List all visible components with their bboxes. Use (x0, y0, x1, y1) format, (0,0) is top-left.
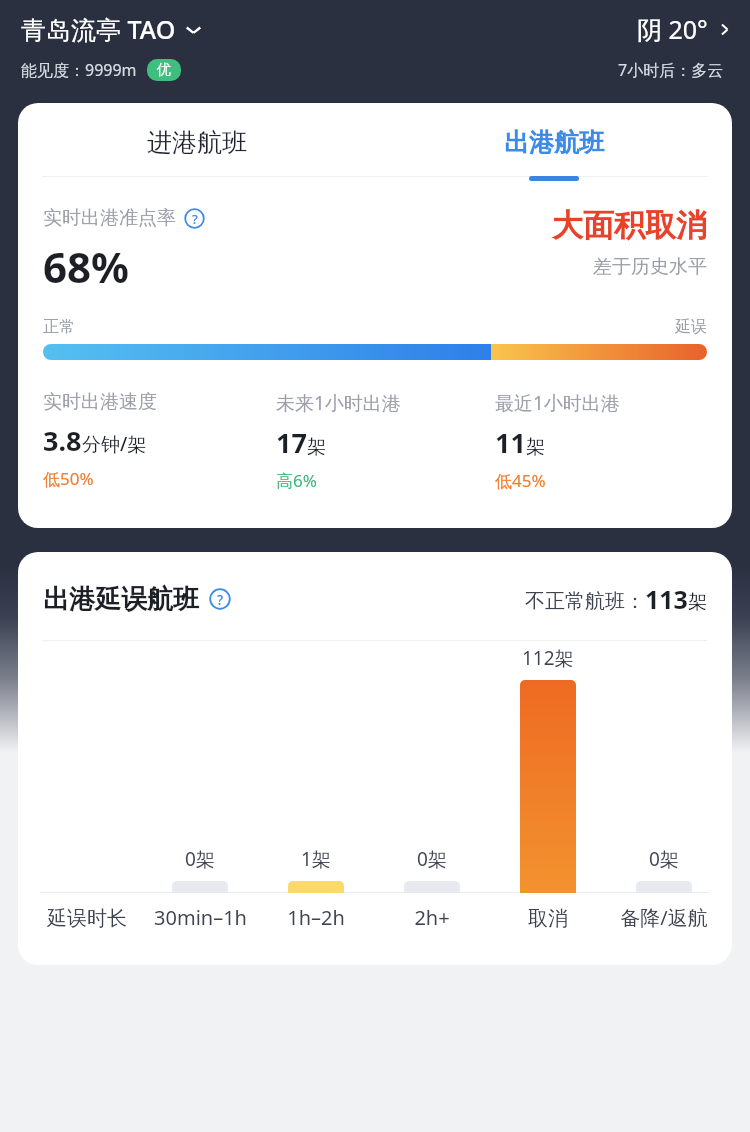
staticText: 延误 (675, 317, 707, 337)
staticText: ? (192, 210, 198, 228)
button[interactable]: 出港航班 (375, 127, 732, 158)
staticText: 不正常航班： (525, 589, 645, 614)
staticText: 7小时后：多云 (618, 59, 724, 81)
staticText: 差于历史水平 (593, 255, 707, 279)
staticText: 实时出港准点率 (43, 206, 176, 230)
staticText: 112架 (522, 645, 574, 671)
staticText: 1h–2h (287, 904, 345, 931)
staticText: 架 (688, 590, 707, 614)
button[interactable]: Help (209, 588, 231, 610)
staticText: 分钟/架 (82, 431, 147, 457)
staticText: 30min–1h (154, 904, 247, 931)
staticText: 0架 (417, 846, 447, 872)
button[interactable]: 1架 (258, 641, 374, 893)
staticText: 2h+ (414, 904, 450, 931)
staticText: 阴 20° (637, 12, 708, 46)
staticText: 取消 (528, 906, 568, 931)
button[interactable]: 0架 (606, 641, 722, 893)
staticText: 备降/返航 (620, 904, 708, 931)
staticText: 青岛流亭 TAO (21, 12, 176, 46)
button[interactable]: 112架 (490, 641, 606, 893)
staticText: ? (217, 590, 224, 609)
staticText: 11 (495, 424, 526, 461)
staticText: 113 (645, 582, 688, 616)
button[interactable]: 未来1小时出港 (276, 390, 495, 492)
staticText: 1架 (301, 846, 331, 872)
button[interactable]: 实时出港速度 (43, 390, 276, 490)
staticText: 优 (157, 61, 171, 79)
staticText: 能见度：9999m (21, 59, 137, 81)
staticText: 进港航班 (147, 127, 247, 158)
staticText: 17 (276, 424, 307, 461)
button[interactable]: 最近1小时出港 (495, 390, 714, 492)
staticText: 出港延误航班 (43, 583, 199, 616)
staticText: 3.8 (43, 422, 82, 459)
staticText: 实时出港速度 (43, 390, 157, 414)
staticText: 正常 (43, 317, 75, 337)
staticText: 0架 (185, 846, 215, 872)
staticText: 低50% (43, 467, 94, 490)
staticText: 架 (307, 435, 326, 459)
staticText: 未来1小时出港 (276, 390, 401, 416)
button[interactable]: Help (184, 208, 205, 229)
button[interactable]: 青岛流亭 TAO (21, 12, 202, 46)
staticText: 低45% (495, 469, 546, 492)
button[interactable]: 0架 (142, 641, 258, 893)
staticText: 0架 (649, 846, 679, 872)
button[interactable]: 阴 20° (637, 12, 732, 46)
staticText: 大面积取消 (552, 206, 707, 245)
button[interactable]: 进港航班 (18, 127, 375, 158)
staticText: 最近1小时出港 (495, 390, 620, 416)
staticText: 高6% (276, 469, 317, 492)
staticText: 68% (43, 238, 129, 295)
staticText: 架 (526, 435, 545, 459)
staticText: 延误时长 (47, 906, 127, 931)
staticText: 出港航班 (504, 127, 604, 158)
button[interactable]: 不正常航班： (525, 582, 707, 616)
button[interactable]: 0架 (374, 641, 490, 893)
